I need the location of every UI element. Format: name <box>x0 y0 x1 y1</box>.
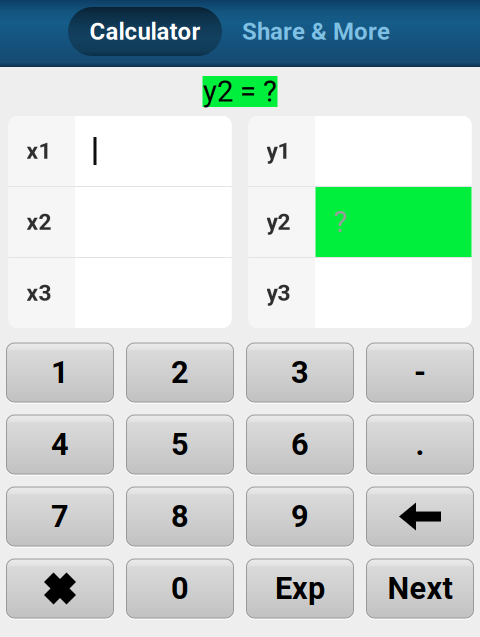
button[interactable]: 6 <box>246 415 353 476</box>
staticText: 6 <box>291 426 309 462</box>
button[interactable] <box>6 559 113 620</box>
staticText: 5 <box>171 426 189 462</box>
button[interactable]: 5 <box>126 415 233 476</box>
staticText: y2 = ? <box>203 74 277 109</box>
button[interactable]: 0 <box>126 559 233 620</box>
staticText: y2 <box>266 209 290 235</box>
staticText: y1 <box>266 138 290 164</box>
staticText: 2 <box>171 354 189 390</box>
button[interactable]: 9 <box>246 487 353 548</box>
button[interactable]: 1 <box>6 343 113 404</box>
staticText: Exp <box>275 570 325 606</box>
staticText: . <box>415 426 424 462</box>
button[interactable]: Next <box>366 559 473 620</box>
button[interactable]: - <box>366 343 473 404</box>
button[interactable]: 7 <box>6 487 113 548</box>
staticText: Share & More <box>242 17 390 45</box>
button[interactable]: Share & More <box>232 7 400 56</box>
staticText: 7 <box>51 498 69 534</box>
button[interactable]: 2 <box>126 343 233 404</box>
staticText: ? <box>333 205 347 239</box>
button[interactable]: 8 <box>126 487 233 548</box>
staticText: y3 <box>266 280 290 306</box>
staticText: 0 <box>171 570 189 606</box>
button[interactable] <box>366 487 473 548</box>
staticText: Calculator <box>89 17 200 45</box>
staticText: 8 <box>171 498 189 534</box>
staticText: x1 <box>26 138 51 164</box>
button[interactable]: 4 <box>6 415 113 476</box>
staticText: 9 <box>291 498 309 534</box>
button[interactable]: . <box>366 415 473 476</box>
staticText: Next <box>387 570 452 606</box>
staticText: 4 <box>51 426 69 462</box>
button[interactable]: Exp <box>246 559 353 620</box>
staticText: x2 <box>26 209 51 235</box>
staticText: 1 <box>51 354 69 390</box>
staticText: - <box>414 354 426 390</box>
button[interactable]: 3 <box>246 343 353 404</box>
button[interactable]: Calculator <box>68 7 222 56</box>
staticText: x3 <box>26 280 51 306</box>
staticText: 3 <box>291 354 309 390</box>
